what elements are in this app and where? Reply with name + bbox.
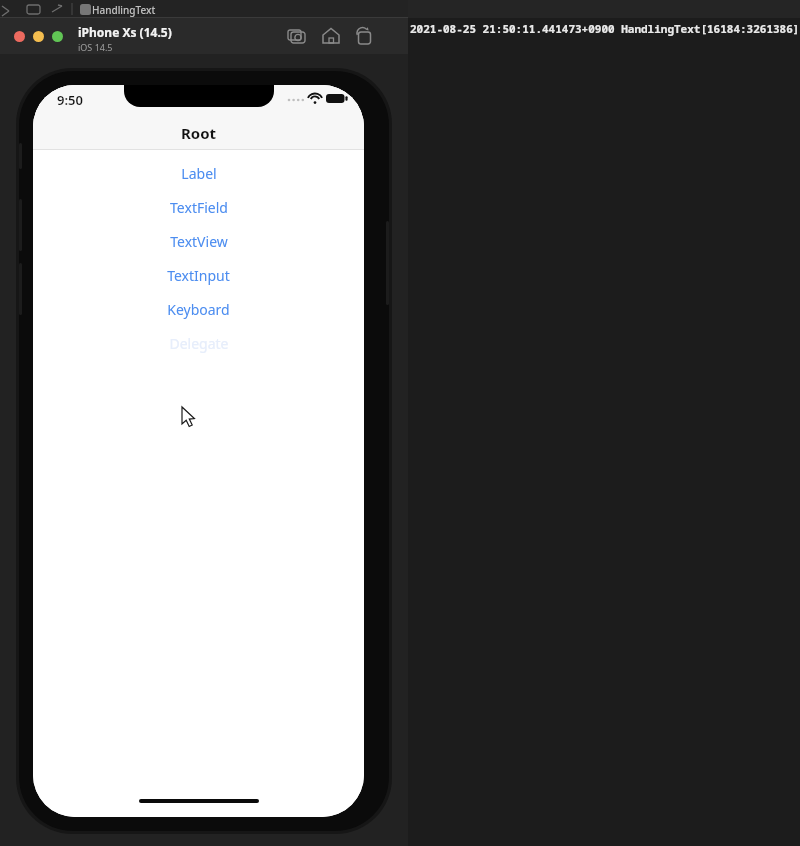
staticText: iOS 14.5	[78, 41, 113, 53]
button[interactable]: TextField	[33, 190, 364, 224]
button[interactable]: Close	[14, 31, 25, 42]
staticText: HandlingText	[92, 3, 156, 17]
button[interactable]: Delegate	[33, 326, 364, 360]
button[interactable]: Keyboard	[33, 292, 364, 326]
button[interactable]: Label	[33, 156, 364, 190]
staticText: TextField	[170, 198, 228, 217]
staticText: 2021-08-25 21:50:11.441473+0900 Handling…	[410, 21, 800, 36]
staticText: 9:50	[57, 91, 83, 109]
staticText: TextView	[170, 232, 228, 251]
button[interactable]: Minimise	[33, 31, 44, 42]
staticText: Delegate	[169, 334, 229, 353]
button[interactable]: Zoom	[52, 31, 63, 42]
button[interactable]: TextInput	[33, 258, 364, 292]
button[interactable]: Rotate	[354, 25, 376, 47]
staticText: Root	[181, 123, 217, 143]
staticText: iPhone Xs (14.5)	[78, 24, 172, 40]
button[interactable]: Screenshot	[286, 25, 308, 47]
staticText: Label	[181, 164, 217, 183]
staticText: Keyboard	[167, 300, 230, 319]
button[interactable]: Home	[320, 25, 342, 47]
button[interactable]: TextView	[33, 224, 364, 258]
staticText: TextInput	[167, 266, 230, 285]
